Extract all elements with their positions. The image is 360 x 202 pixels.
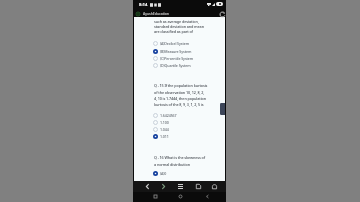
button[interactable]: Reload (219, 11, 225, 17)
staticText: of the observation 10, 12, 8, 2, (154, 90, 205, 95)
staticText: (B)Measure System (160, 49, 192, 54)
button[interactable]: Home (209, 181, 219, 191)
button[interactable]: 1.011 (153, 133, 225, 140)
staticText: (A)0 (160, 171, 167, 176)
button[interactable]: Back (142, 181, 152, 191)
staticText: 1.044 (160, 127, 169, 132)
button[interactable]: Forward (158, 181, 168, 191)
staticText: 4, 10 is 1.7444, then population (154, 96, 207, 101)
staticText: Q - 15 If the population kurtosis (154, 83, 208, 88)
staticText: 1.011 (160, 134, 169, 139)
staticText: 8:14 (139, 2, 148, 8)
button[interactable]: Home (175, 191, 185, 201)
button[interactable]: 1.044 (153, 126, 225, 133)
button[interactable]: Tabs (193, 181, 203, 191)
staticText: AyushEducation (143, 11, 169, 16)
button[interactable]: (B)Measure System (153, 48, 225, 55)
staticText: such as average deviation, (154, 19, 199, 24)
button[interactable]: (D)Quartile System (153, 62, 225, 69)
staticText: (D)Quartile System (160, 63, 191, 68)
button[interactable]: (A)Decibel System (153, 40, 225, 47)
staticText: a normal distribution (154, 162, 190, 167)
button[interactable]: Back (202, 191, 212, 201)
staticText: 1.6424567 (160, 113, 177, 118)
button[interactable]: Recents (150, 191, 160, 201)
button[interactable]: 1.6424567 (153, 112, 225, 119)
staticText: 1.100 (160, 120, 169, 125)
staticText: are classified as part of (154, 29, 193, 34)
staticText: kurtosis of the 8, 9, 3, 1, 2, 5 is (154, 102, 204, 107)
button[interactable]: Menu (175, 181, 185, 191)
staticText: (C)Percentile System (160, 56, 194, 61)
button[interactable]: (C)Percentile System (153, 55, 225, 62)
staticText: (A)Decibel System (160, 41, 189, 46)
button[interactable]: Feedback (220, 103, 225, 115)
staticText: standard deviation and mean (154, 24, 204, 29)
button[interactable]: 1.100 (153, 119, 225, 126)
staticText: Q - 16 What is the skewness of (154, 155, 206, 160)
button[interactable]: (A)0 (153, 170, 225, 177)
